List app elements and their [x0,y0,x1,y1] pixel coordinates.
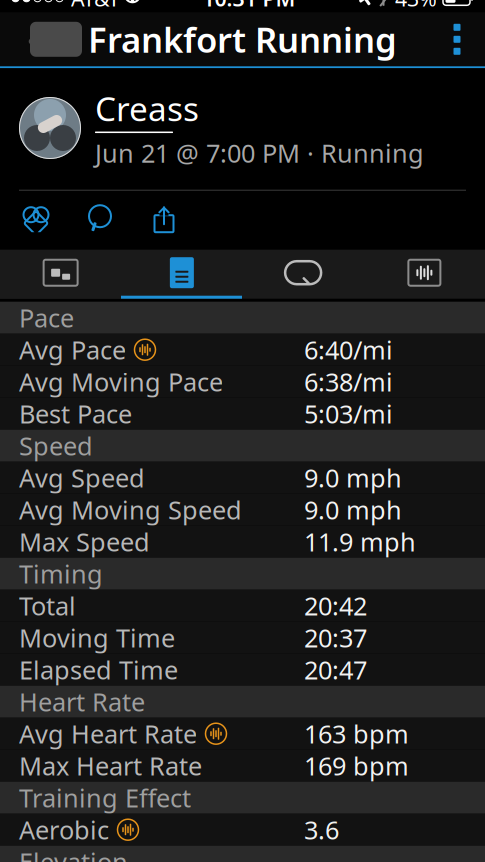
staticText: AT&T [71,0,120,12]
staticText: 5:03/mi [304,397,393,430]
button[interactable]: Avg Heart Rate [0,718,485,750]
staticText: Timing [19,557,103,590]
staticText: Elapsed Time [19,653,178,686]
button[interactable]: Aerobic [0,814,485,846]
staticText: 9.0 mph [304,493,402,526]
button[interactable]: Total [0,590,485,622]
staticText: Total [19,589,76,622]
button[interactable]: Share [147,203,181,235]
staticText: 20:37 [304,621,367,654]
staticText: Avg Moving Speed [19,493,242,526]
staticText: Creass [95,86,199,131]
button[interactable]: Avg Moving Speed [0,494,485,526]
staticText: Max Speed [19,525,150,558]
button[interactable]: Avg Pace [0,334,485,366]
staticText: 3.6 [304,813,339,846]
staticText: 9.0 mph [304,461,402,494]
button[interactable]: Max Heart Rate [0,750,485,782]
staticText: Heart Rate [19,685,145,718]
staticText: Avg Moving Pace [19,365,223,398]
button[interactable]: Elapsed Time [0,654,485,686]
button[interactable]: Map [0,250,121,296]
button[interactable]: Details [121,250,242,296]
staticText: 169 bpm [304,749,409,782]
staticText: 11.9 mph [304,525,416,558]
button[interactable]: Avg Moving Pace [0,366,485,398]
staticText: Max Heart Rate [19,749,202,782]
staticText: 20:47 [304,653,367,686]
staticText: 6:38/mi [304,365,393,398]
button[interactable]: Moving Time [0,622,485,654]
staticText: Avg Speed [19,461,145,494]
staticText: 6:40/mi [304,333,393,366]
staticText: Elevation [19,845,128,862]
staticText: Pace [19,301,74,334]
staticText: Moving Time [19,621,175,654]
button[interactable]: Comment [83,203,117,235]
staticText: Training Effect [19,781,191,814]
staticText: 10:31 PM [202,0,295,12]
button[interactable]: Avg Speed [0,462,485,494]
button[interactable]: More options [429,13,485,65]
button[interactable]: Best Pace [0,398,485,430]
button[interactable]: Creass [95,86,199,133]
button[interactable]: Max Speed [0,526,485,558]
staticText: 163 bpm [304,717,409,750]
staticText: Frankfort Running [88,16,397,62]
staticText: Avg Heart Rate [19,717,197,750]
staticText: Jun 21 @ 7:00 PM · Running [95,136,424,170]
staticText: 43% [395,0,437,12]
button[interactable]: Like [19,203,53,235]
staticText: 20:42 [304,589,367,622]
staticText: Avg Pace [19,333,126,366]
staticText: Best Pace [19,397,132,430]
button[interactable]: Charts [364,250,485,296]
staticText: Aerobic [19,813,109,846]
button[interactable]: Laps [242,250,364,296]
button[interactable]: Back [0,13,86,65]
staticText: Speed [19,429,93,462]
